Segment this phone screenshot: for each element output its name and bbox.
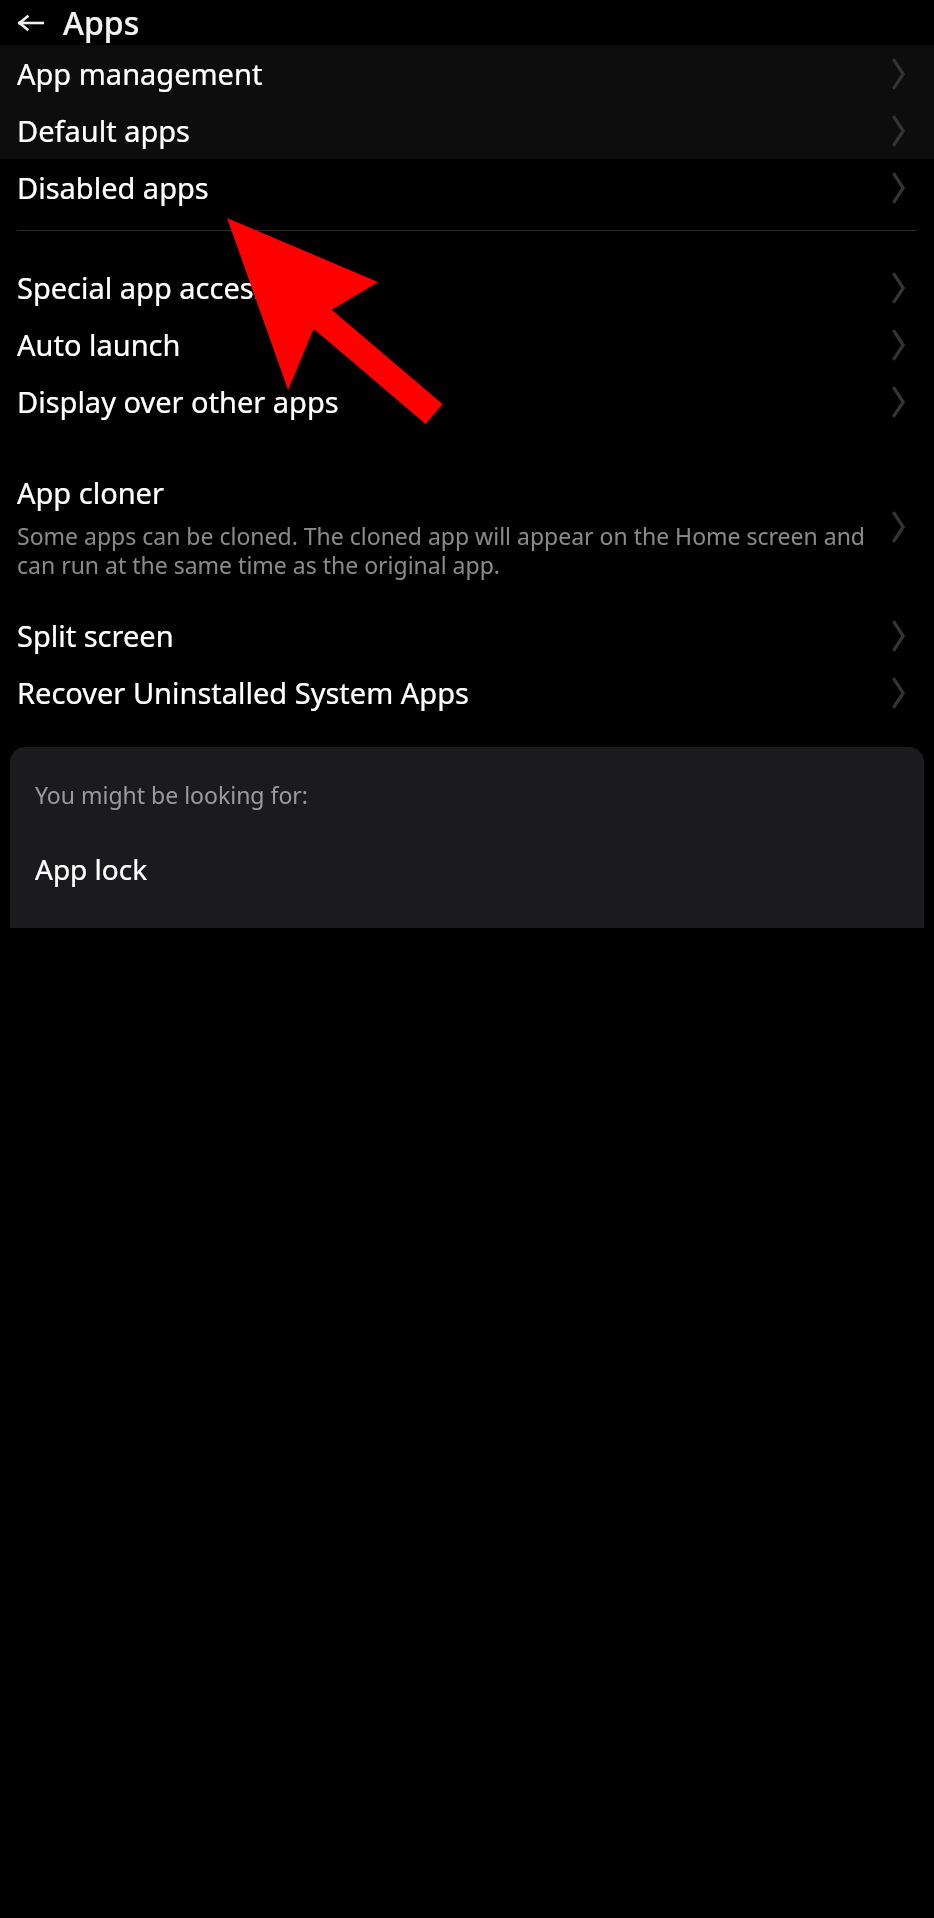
staticText: Auto launch bbox=[17, 325, 884, 364]
staticText: Some apps can be cloned. The cloned app … bbox=[17, 520, 876, 581]
button[interactable]: Back bbox=[10, 2, 52, 44]
staticText: You might be looking for: bbox=[35, 779, 308, 810]
staticText: App lock bbox=[35, 850, 148, 888]
button[interactable]: Recover Uninstalled System Apps bbox=[0, 664, 934, 721]
button[interactable]: Auto launch bbox=[0, 316, 934, 373]
staticText: App cloner bbox=[17, 473, 164, 512]
button[interactable]: Default apps bbox=[0, 102, 934, 159]
button[interactable]: Disabled apps bbox=[0, 159, 934, 216]
staticText: Disabled apps bbox=[17, 168, 884, 207]
staticText: Recover Uninstalled System Apps bbox=[17, 673, 884, 712]
staticText: Display over other apps bbox=[17, 382, 884, 421]
button[interactable]: You might be looking for: bbox=[10, 747, 924, 928]
button[interactable]: App management bbox=[0, 45, 934, 102]
staticText: Special app access bbox=[17, 268, 884, 307]
staticText: Apps bbox=[63, 1, 140, 45]
button[interactable]: Split screen bbox=[0, 607, 934, 664]
staticText: App management bbox=[17, 54, 884, 93]
button[interactable]: App cloner bbox=[0, 473, 934, 581]
staticText: Split screen bbox=[17, 616, 884, 655]
button[interactable]: Special app access bbox=[0, 259, 934, 316]
button[interactable]: Display over other apps bbox=[0, 373, 934, 430]
staticText: Default apps bbox=[17, 111, 884, 150]
